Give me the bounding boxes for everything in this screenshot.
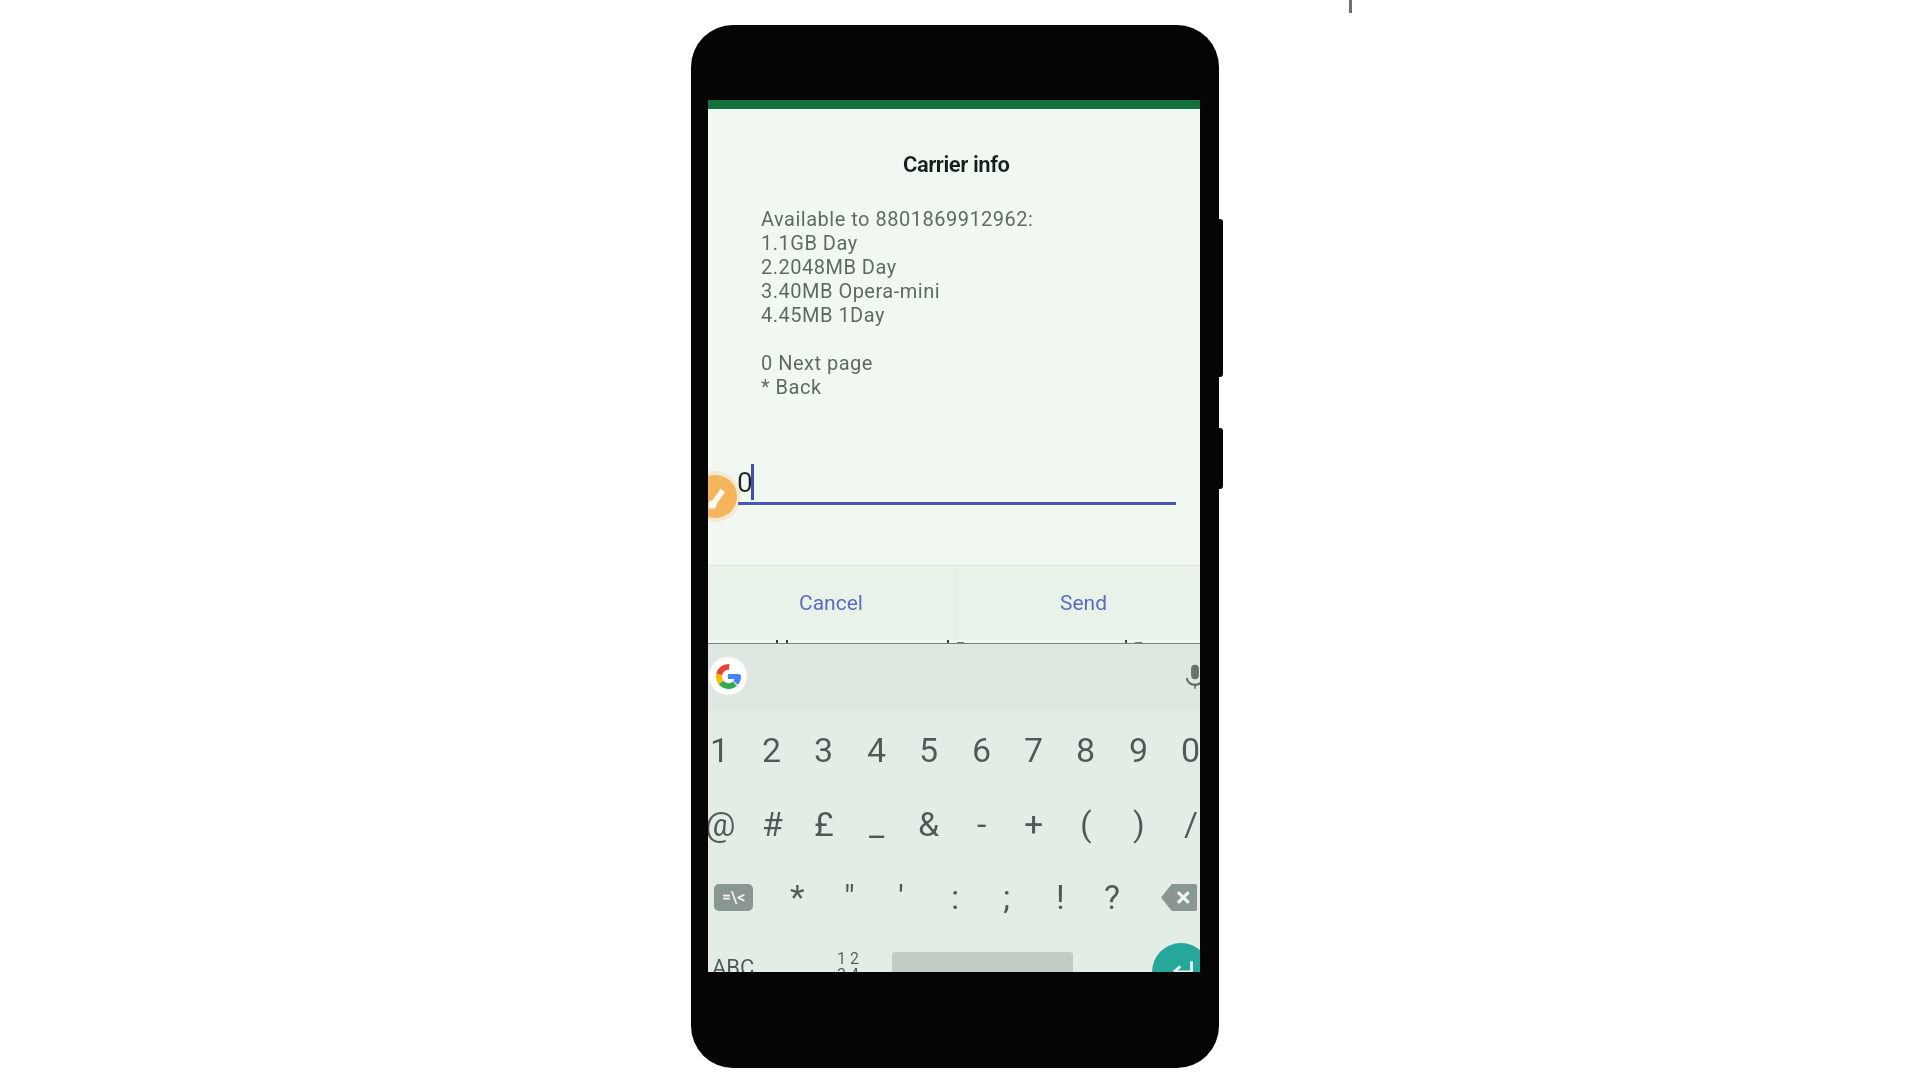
button[interactable]: @ [708,796,746,852]
button[interactable]: 0 [1165,722,1200,778]
staticText: 3.40MB Opera-mini [761,279,941,302]
button[interactable]: ' [875,872,927,922]
button[interactable]: Google [709,657,747,695]
staticText: * [790,877,805,917]
staticText: ; [1003,877,1011,917]
staticText: 3 [814,730,834,770]
staticText: Send [1060,591,1108,616]
button[interactable]: _ [851,796,903,852]
button[interactable]: ! [1034,872,1086,922]
button[interactable]: # [746,796,798,852]
staticText: Carrier info [903,152,1010,178]
button[interactable]: 2 [746,722,798,778]
staticText: 7 [1024,730,1044,770]
staticText: : [951,877,960,917]
button[interactable]: / [1165,796,1200,852]
staticText: ! [1056,877,1065,917]
button[interactable]: ? [1086,872,1138,922]
staticText: 5 [919,730,939,770]
button[interactable]: Symbols [708,878,761,916]
staticText: Cancel [799,591,863,616]
staticText: 2.2048MB Day [761,255,897,278]
button[interactable]: 9 [1113,722,1165,778]
button[interactable]: 6 [956,722,1008,778]
staticText: ? [1104,877,1121,917]
staticText: 8 [1076,730,1096,770]
button[interactable]: ) [1113,796,1165,852]
staticText: @ [708,804,736,844]
button[interactable]: 4 [851,722,903,778]
staticText: 4 [867,730,887,770]
button[interactable]: : [929,872,981,922]
staticText: 0 [1181,730,1200,770]
staticText: 1 [710,730,730,770]
staticText: =\< [722,888,746,907]
staticText: 1 2 3 4 [837,949,859,972]
staticText: ABC [712,955,755,972]
button[interactable]: 7 [1008,722,1060,778]
staticText: / [1184,804,1199,844]
button[interactable]: 8 [1060,722,1112,778]
staticText: 6 [972,730,992,770]
staticText: Available to 8801869912962: [761,207,1034,230]
staticText: ' [898,877,904,917]
staticText: 0 [737,466,753,499]
staticText: 0 Next page [761,351,873,374]
button[interactable]: Enter [1152,943,1200,972]
button[interactable]: * [771,872,823,922]
button[interactable]: Backspace [1153,878,1200,916]
button[interactable]: Cancel [708,566,954,640]
button[interactable]: 1 [708,722,746,778]
staticText: £ [814,804,834,844]
staticText: - [977,804,987,844]
button[interactable]: ; [981,872,1033,922]
staticText: 4.45MB 1Day [761,303,885,326]
staticText: ) [1133,804,1145,844]
staticText: " [844,877,855,917]
staticText: & [918,804,940,844]
staticText: 9 [1129,730,1149,770]
staticText: # [762,804,783,844]
button[interactable]: - [956,796,1008,852]
button[interactable]: & [903,796,955,852]
staticText: _ [869,804,885,844]
button[interactable]: " [823,872,875,922]
button[interactable]: Send [954,566,1200,640]
button[interactable]: Voice input [1178,660,1200,694]
button[interactable]: £ [798,796,850,852]
staticText: 2 [762,730,782,770]
staticText: * Back [761,375,822,398]
button[interactable]: ( [1060,796,1112,852]
staticText: ( [1080,804,1092,844]
button[interactable]: 3 [798,722,850,778]
button[interactable]: + [1008,796,1060,852]
button[interactable]: 5 [903,722,955,778]
staticText: 1.1GB Day [761,231,858,254]
staticText: + [1024,804,1044,844]
